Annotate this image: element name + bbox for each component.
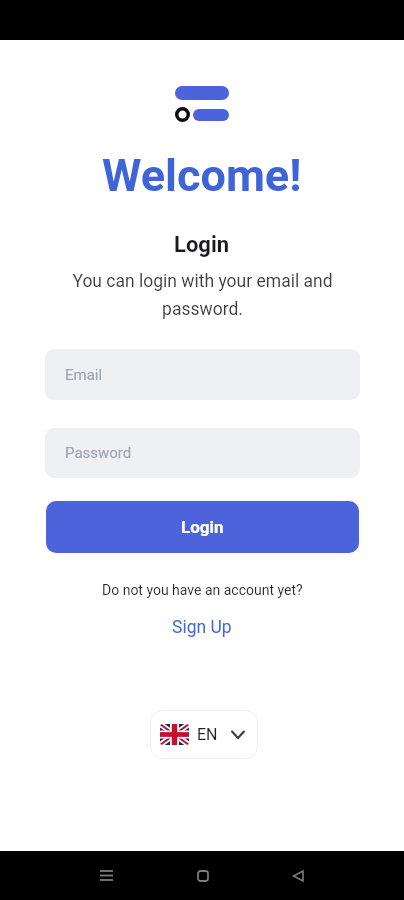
staticText: Do not you have an account yet?: [102, 582, 303, 598]
button[interactable]: [190, 863, 215, 888]
button[interactable]: [286, 863, 311, 888]
button[interactable]: Sign Up: [150, 610, 254, 644]
staticText: You can login with your email and passwo…: [72, 271, 333, 319]
staticText: Sign Up: [172, 617, 232, 638]
button[interactable]: Password: [45, 428, 360, 478]
button[interactable]: Login: [46, 501, 359, 553]
staticText: Login: [181, 517, 224, 537]
button[interactable]: Email: [45, 349, 360, 400]
staticText: Login: [174, 232, 230, 258]
button[interactable]: [94, 863, 119, 888]
staticText: EN: [197, 725, 218, 744]
button[interactable]: EN: [150, 710, 258, 759]
staticText: Email: [65, 366, 103, 384]
staticText: Welcome!: [102, 149, 302, 202]
staticText: Password: [65, 444, 132, 462]
